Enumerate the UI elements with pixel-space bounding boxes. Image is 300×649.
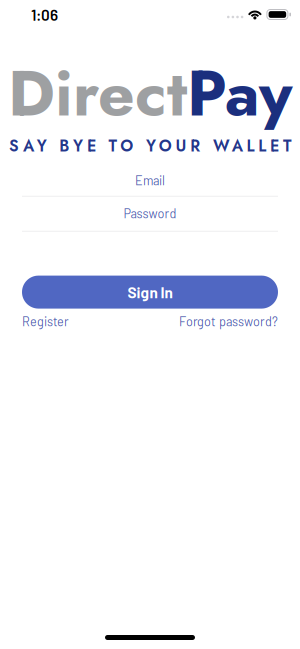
staticText: SAY BYE TO YOUR WALLET [9, 134, 291, 158]
staticText: Register [22, 314, 69, 329]
button[interactable]: Forgot password? [179, 314, 278, 329]
button[interactable]: Email [0, 173, 300, 197]
staticText: Pay [187, 47, 292, 139]
button[interactable]: Password [0, 206, 300, 232]
staticText: Sign In [127, 283, 172, 301]
staticText: Direct [8, 47, 187, 139]
button[interactable]: Sign In [0, 276, 300, 309]
staticText: 1:06 [31, 5, 58, 24]
button[interactable]: Register [22, 314, 69, 329]
staticText: Password [123, 206, 176, 221]
staticText: Email [135, 173, 165, 188]
staticText: Forgot password? [179, 314, 278, 329]
